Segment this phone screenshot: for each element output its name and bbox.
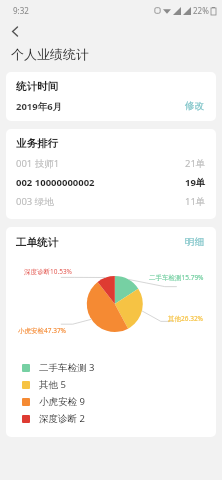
button[interactable]: 002 10000000002 bbox=[16, 173, 206, 192]
staticText: 2019年6月 bbox=[16, 100, 63, 113]
staticText: 修改 bbox=[185, 100, 204, 112]
staticText: 深度诊断10.53% bbox=[24, 267, 73, 276]
staticText: 11单 bbox=[185, 195, 206, 208]
staticText: 其他26.32% bbox=[168, 314, 204, 323]
staticText: 二手车检测 3 bbox=[39, 361, 95, 374]
staticText: 统计时间 bbox=[16, 80, 58, 93]
button[interactable]: 深度诊断 2 bbox=[16, 410, 206, 427]
button[interactable]: 小虎安检 9 bbox=[16, 393, 206, 410]
button[interactable]: 二手车检测 3 bbox=[16, 359, 206, 376]
button[interactable]: 明细 bbox=[183, 235, 206, 249]
button[interactable]: 001 技师1 bbox=[16, 154, 206, 173]
staticText: 9:32 bbox=[13, 5, 29, 16]
staticText: 002 10000000002 bbox=[16, 176, 95, 189]
button[interactable]: 003 绿地 bbox=[16, 192, 206, 211]
staticText: 小虎安检47.37% bbox=[18, 326, 67, 335]
staticText: 小虎安检 9 bbox=[39, 395, 85, 408]
staticText: 二手车检测15.79% bbox=[149, 273, 204, 282]
button[interactable]: 其他 5 bbox=[16, 376, 206, 393]
staticText: 明细 bbox=[185, 236, 204, 248]
staticText: 深度诊断 2 bbox=[39, 412, 85, 425]
staticText: 22% bbox=[193, 5, 209, 16]
staticText: 工单统计 bbox=[16, 236, 58, 249]
staticText: 001 技师1 bbox=[16, 157, 60, 170]
staticText: 其他 5 bbox=[39, 378, 66, 391]
staticText: 19单 bbox=[185, 176, 206, 189]
staticText: 003 绿地 bbox=[16, 195, 54, 208]
staticText: 21单 bbox=[185, 157, 206, 170]
button[interactable]: Back bbox=[4, 20, 26, 42]
button[interactable]: 修改 bbox=[183, 99, 206, 113]
staticText: 业务排行 bbox=[16, 137, 58, 150]
staticText: 个人业绩统计 bbox=[11, 46, 89, 62]
